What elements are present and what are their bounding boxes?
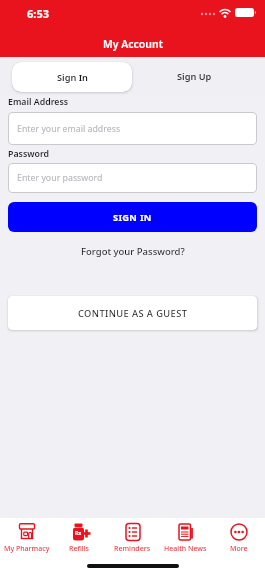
button[interactable]: Sign In [12, 62, 132, 92]
staticText: My Pharmacy [4, 544, 50, 554]
staticText: Sign Up [177, 70, 212, 83]
button[interactable]: Enter your email address [8, 112, 257, 145]
staticText: Password [8, 148, 50, 160]
button[interactable]: Health News [159, 518, 212, 574]
staticText: Enter your email address [17, 123, 121, 135]
button[interactable]: More [212, 518, 265, 574]
button[interactable]: SIGN IN [8, 202, 257, 232]
staticText: Enter your password [17, 172, 103, 184]
staticText: Refills [69, 544, 90, 554]
button[interactable]: Forgot your Password? [81, 245, 185, 258]
button[interactable]: Rx [53, 518, 106, 574]
button[interactable]: CONTINUE AS A GUEST [8, 296, 257, 330]
button[interactable]: My Pharmacy [0, 518, 53, 574]
staticText: Reminders [114, 544, 151, 554]
staticText: My Account [103, 37, 163, 51]
button[interactable]: Sign Up [132, 57, 257, 96]
button[interactable]: Reminders [106, 518, 159, 574]
staticText: Health News [164, 544, 207, 554]
staticText: SIGN IN [113, 211, 152, 224]
staticText: Rx [75, 530, 82, 537]
staticText: Email Address [8, 96, 69, 108]
button[interactable]: Enter your password [8, 163, 257, 193]
staticText: CONTINUE AS A GUEST [78, 307, 188, 320]
staticText: 6:53 [27, 6, 49, 21]
staticText: More [230, 544, 248, 554]
staticText: Sign In [57, 71, 88, 84]
